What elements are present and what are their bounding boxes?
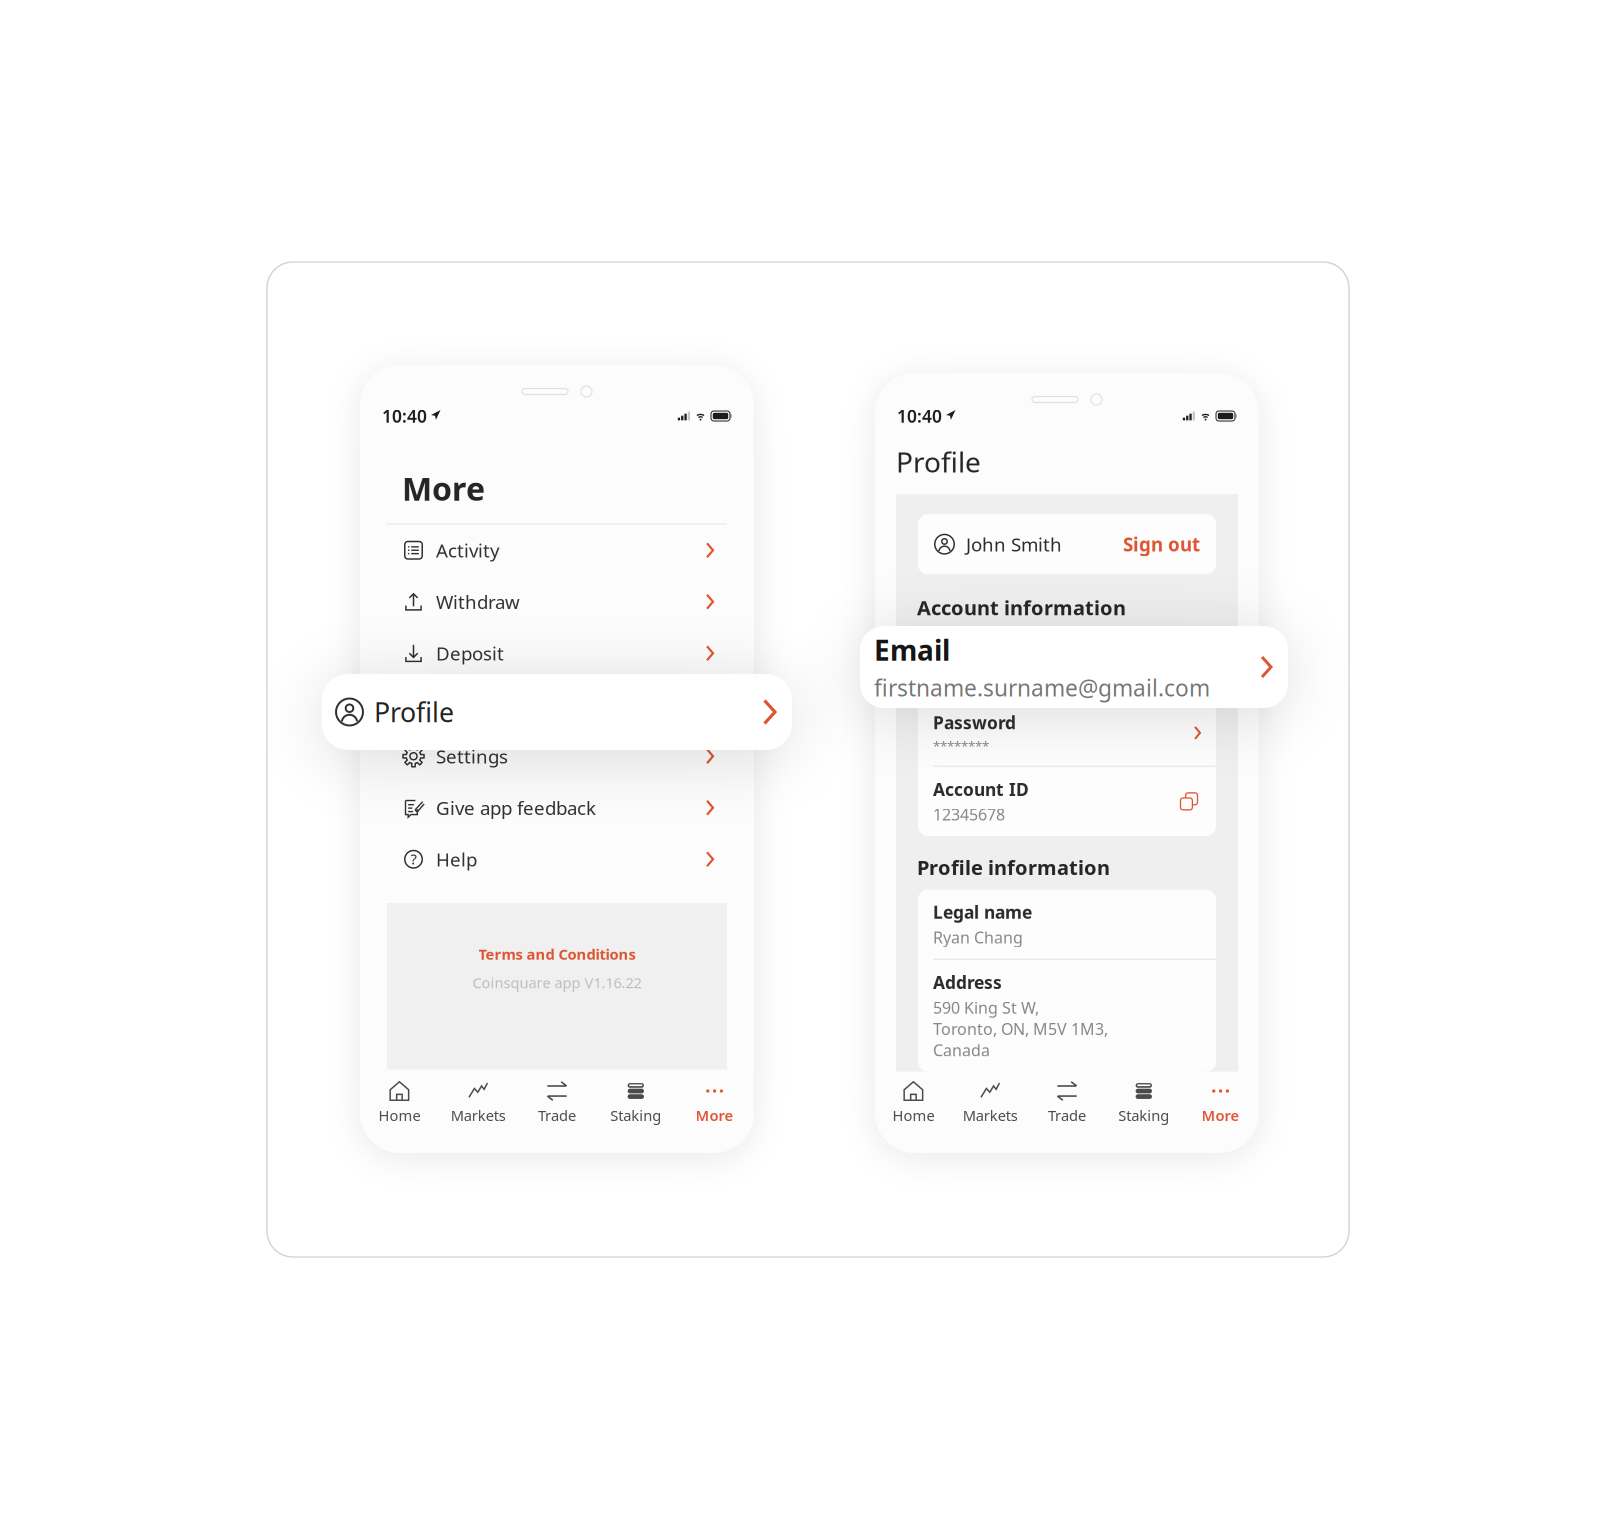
staticText: Profile information bbox=[917, 854, 1110, 881]
staticText: Profile bbox=[436, 692, 492, 717]
button[interactable]: Account ID bbox=[918, 767, 1216, 836]
button[interactable]: John Smith bbox=[918, 514, 1216, 574]
button[interactable]: More bbox=[675, 1077, 754, 1128]
staticText: firstname.surname@gmail.com bbox=[933, 667, 1172, 688]
button[interactable]: Give app feedback bbox=[360, 782, 754, 833]
staticText: Staking bbox=[610, 1105, 661, 1125]
staticText: Home bbox=[378, 1105, 420, 1125]
button[interactable]: Legal name bbox=[918, 890, 1216, 959]
button[interactable]: Email bbox=[918, 630, 1216, 699]
staticText: Give app feedback bbox=[436, 795, 596, 820]
button[interactable]: Settings bbox=[360, 730, 754, 782]
button[interactable]: Address bbox=[918, 960, 1216, 1072]
button[interactable]: Trade bbox=[1029, 1077, 1105, 1128]
staticText: Terms and Conditions bbox=[478, 944, 635, 964]
staticText: Profile bbox=[374, 694, 454, 730]
staticText: More bbox=[402, 467, 485, 509]
button[interactable]: Profile bbox=[322, 674, 792, 750]
staticText: John Smith bbox=[966, 532, 1062, 557]
staticText: More bbox=[1202, 1105, 1240, 1125]
staticText: Trade bbox=[1048, 1105, 1086, 1125]
staticText: 10:40 bbox=[382, 404, 427, 427]
staticText: 12345678 bbox=[933, 804, 1005, 825]
staticText: Sign out bbox=[1123, 532, 1200, 557]
staticText: Account information bbox=[917, 594, 1126, 621]
staticText: Address bbox=[933, 971, 1002, 994]
button[interactable]: Copy Account ID bbox=[1177, 789, 1201, 813]
staticText: Account ID bbox=[933, 778, 1029, 801]
button[interactable]: Markets bbox=[439, 1077, 518, 1128]
staticText: Email bbox=[874, 631, 950, 669]
button[interactable]: Password bbox=[918, 700, 1216, 766]
staticText: Home bbox=[892, 1105, 934, 1125]
button[interactable]: Home bbox=[875, 1077, 952, 1128]
button[interactable]: More bbox=[1182, 1077, 1259, 1128]
staticText: More bbox=[696, 1105, 734, 1125]
staticText: Coinsquare app V1.16.22 bbox=[472, 973, 641, 992]
staticText: ******** bbox=[933, 737, 989, 755]
staticText: Settings bbox=[436, 744, 508, 769]
staticText: Help bbox=[436, 847, 477, 872]
staticText: Staking bbox=[1118, 1105, 1169, 1125]
staticText: Email bbox=[933, 641, 980, 664]
button[interactable]: Terms and Conditions bbox=[478, 944, 635, 964]
button[interactable]: Markets bbox=[952, 1077, 1029, 1128]
staticText: Trade bbox=[538, 1105, 576, 1125]
button[interactable]: ? bbox=[360, 833, 754, 885]
staticText: 10:40 bbox=[897, 404, 942, 427]
button[interactable]: Home bbox=[360, 1077, 439, 1128]
button[interactable]: Staking bbox=[1105, 1077, 1182, 1128]
staticText: firstname.surname@gmail.com bbox=[874, 672, 1210, 703]
button[interactable]: Profile bbox=[360, 679, 754, 730]
button[interactable]: Withdraw bbox=[360, 576, 754, 627]
button[interactable]: Activity bbox=[360, 524, 754, 576]
staticText: ? bbox=[410, 849, 416, 869]
button[interactable]: Deposit bbox=[360, 627, 754, 679]
staticText: Profile bbox=[896, 443, 981, 480]
staticText: Ryan Chang bbox=[933, 927, 1023, 948]
staticText: Deposit bbox=[436, 641, 504, 666]
staticText: Password bbox=[933, 711, 1016, 734]
button[interactable]: Email bbox=[860, 626, 1288, 708]
staticText: 590 King St W, Toronto, ON, M5V 1M3, Can… bbox=[933, 997, 1108, 1060]
button[interactable]: Staking bbox=[596, 1077, 675, 1128]
staticText: Markets bbox=[451, 1105, 506, 1125]
button[interactable]: Trade bbox=[518, 1077, 596, 1128]
staticText: Activity bbox=[436, 538, 500, 563]
staticText: Withdraw bbox=[436, 589, 520, 614]
staticText: Markets bbox=[963, 1105, 1018, 1125]
staticText: Legal name bbox=[933, 901, 1032, 924]
